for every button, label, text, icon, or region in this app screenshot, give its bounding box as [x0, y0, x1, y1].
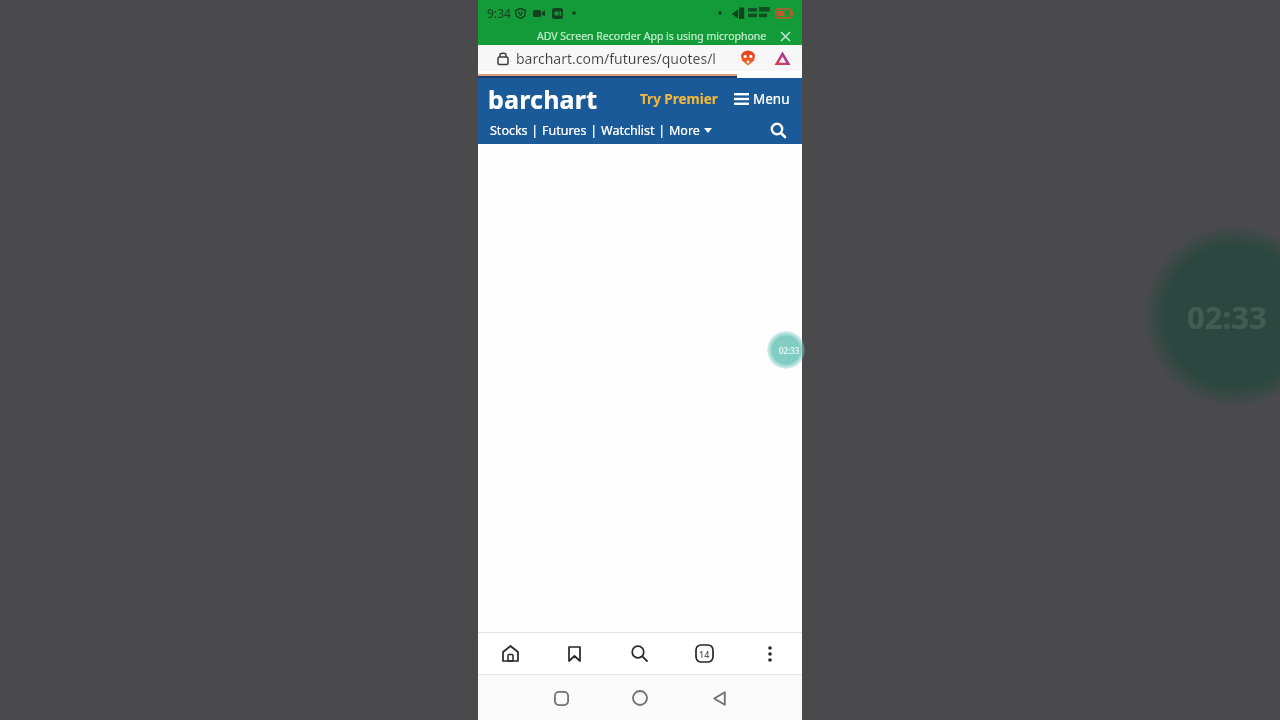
staticText: |: [528, 122, 542, 139]
button[interactable]: [740, 50, 756, 66]
button[interactable]: Try Premier: [640, 90, 718, 108]
staticText: |: [655, 122, 669, 139]
staticText: |: [587, 122, 601, 139]
staticText: 02:33: [779, 345, 800, 356]
button[interactable]: [766, 118, 790, 142]
staticText: Menu: [753, 90, 790, 108]
button[interactable]: [774, 51, 791, 66]
button[interactable]: [542, 633, 607, 674]
staticText: Try Premier: [640, 90, 718, 108]
staticText: Watchlist: [601, 122, 655, 139]
button[interactable]: Futures: [542, 122, 587, 139]
staticText: Futures: [542, 122, 587, 139]
button[interactable]: [625, 683, 655, 713]
button[interactable]: [607, 633, 672, 674]
button[interactable]: [478, 633, 542, 674]
button[interactable]: 14: [672, 633, 737, 674]
button[interactable]: More: [669, 122, 712, 139]
button[interactable]: [737, 633, 802, 674]
staticText: Stocks: [490, 122, 528, 139]
button[interactable]: [704, 683, 734, 713]
staticText: More: [669, 122, 704, 139]
staticText: barchart.com/futures/quotes/l: [516, 49, 716, 68]
button[interactable]: barchart.com/futures/quotes/l: [487, 45, 793, 71]
button[interactable]: Menu: [734, 90, 790, 108]
staticText: 14: [699, 648, 710, 660]
button[interactable]: [546, 683, 576, 713]
staticText: 02:33: [1187, 296, 1267, 338]
staticText: barchart: [488, 82, 598, 116]
staticText: ADV Screen Recorder App is using microph…: [537, 29, 767, 43]
button[interactable]: 02:33: [767, 331, 805, 369]
button[interactable]: Watchlist: [601, 122, 655, 139]
button[interactable]: [777, 28, 793, 44]
button[interactable]: Stocks: [490, 122, 528, 139]
staticText: 9:34: [487, 5, 511, 21]
